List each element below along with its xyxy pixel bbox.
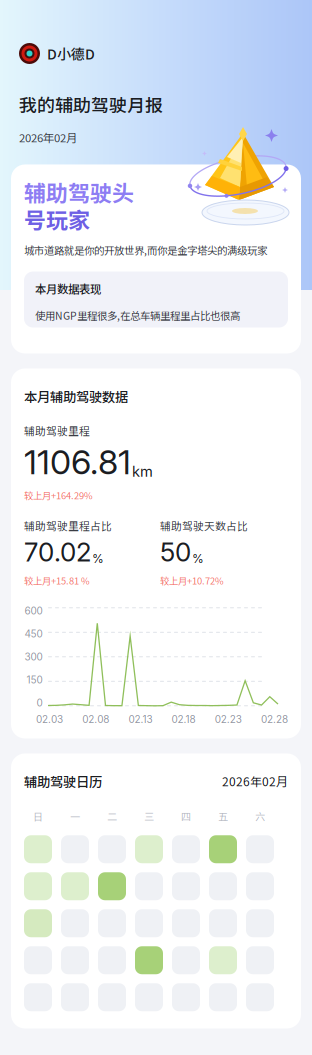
staticText: 二	[107, 809, 117, 823]
staticText: 70.02	[24, 536, 91, 568]
staticText: 六	[255, 809, 265, 823]
staticText: 1106.81	[24, 441, 131, 482]
staticText: 02.08	[82, 713, 109, 725]
staticText: 本月辅助驾驶数据	[24, 386, 128, 406]
staticText: %	[192, 551, 204, 566]
staticText: 辅助驾驶头	[24, 176, 134, 208]
staticText: 五	[218, 809, 228, 823]
staticText: 02.23	[215, 713, 242, 725]
staticText: 较上月+164.29%	[24, 488, 93, 502]
staticText: 150	[26, 674, 42, 686]
staticText: 02.28	[261, 713, 288, 725]
staticText: 城市道路就是你的开放世界,而你是金字塔尖的满级玩家	[24, 242, 267, 258]
staticText: 2026年02月	[222, 772, 288, 790]
staticText: 辅助驾驶里程	[24, 423, 90, 438]
staticText: 本月数据表现	[35, 280, 101, 297]
staticText: 600	[24, 605, 42, 617]
staticText: km	[132, 463, 153, 480]
staticText: 日	[33, 809, 43, 823]
staticText: 02.13	[128, 713, 152, 725]
staticText: 2026年02月	[19, 129, 77, 145]
staticText: 辅助驾驶天数占比	[160, 518, 248, 533]
staticText: 我的辅助驾驶月报	[19, 91, 163, 117]
staticText: 三	[144, 809, 154, 823]
staticText: 较上月+15.81 %	[24, 574, 90, 587]
staticText: 辅助驾驶里程占比	[24, 518, 112, 533]
staticText: 02.03	[36, 713, 63, 725]
staticText: 号玩家	[24, 203, 90, 235]
staticText: 02.18	[172, 713, 196, 725]
staticText: 使用NGP里程很多,在总车辆里程里占比也很高	[35, 308, 240, 323]
staticText: 四	[181, 809, 191, 823]
staticText: 较上月+10.72%	[160, 574, 224, 587]
staticText: 辅助驾驶日历	[24, 771, 102, 791]
staticText: 50	[160, 536, 191, 568]
staticText: 300	[24, 651, 42, 663]
staticText: D小德D	[47, 43, 95, 64]
staticText: 一	[70, 809, 80, 823]
staticText: 0	[36, 697, 42, 709]
staticText: %	[92, 551, 104, 566]
staticText: 450	[24, 628, 42, 640]
